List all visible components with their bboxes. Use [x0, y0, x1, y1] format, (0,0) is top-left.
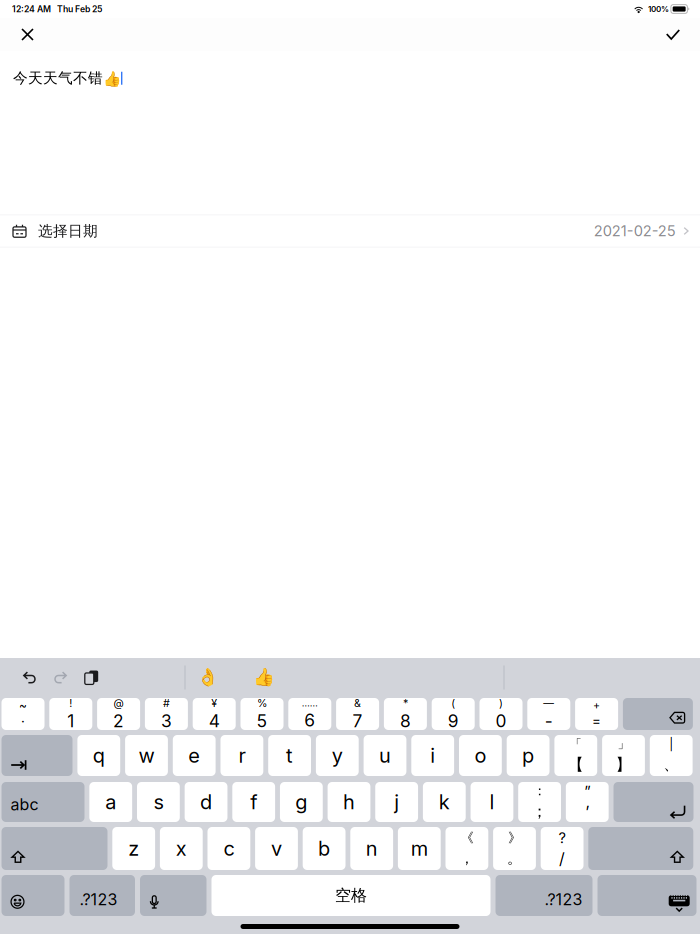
button[interactable]: Thumbs up emoji — [241, 663, 285, 691]
staticText: / — [559, 849, 565, 868]
button[interactable]: Tab — [1, 735, 72, 776]
staticText: d — [200, 790, 212, 814]
staticText: .?123 — [79, 890, 117, 909]
button[interactable]: Hide Keyboard — [597, 875, 696, 916]
button[interactable]: ? — [541, 827, 583, 870]
button[interactable]: o — [459, 735, 502, 776]
button[interactable]: Shift — [1, 827, 107, 870]
staticText: 今天天气不错👍 — [13, 69, 121, 87]
button[interactable]: ! — [49, 698, 92, 730]
button[interactable]: 」 — [602, 735, 645, 776]
staticText: 3 — [161, 710, 172, 731]
button[interactable]: ： — [518, 782, 561, 822]
button[interactable]: & — [336, 698, 379, 730]
button[interactable]: k — [423, 782, 466, 822]
button[interactable]: j — [375, 782, 418, 822]
button[interactable]: p — [507, 735, 549, 776]
button[interactable]: q — [77, 735, 120, 776]
staticText: s — [153, 790, 163, 814]
button[interactable]: 空格 — [211, 875, 490, 916]
button[interactable]: a — [89, 782, 132, 822]
staticText: — — [543, 697, 554, 709]
staticText: % — [257, 697, 267, 709]
button[interactable]: Save — [651, 18, 695, 51]
button[interactable]: ¥ — [193, 698, 236, 730]
staticText: 👍 — [252, 667, 274, 688]
button[interactable]: n — [350, 827, 393, 870]
button[interactable]: Delete — [623, 698, 693, 730]
staticText: 9 — [448, 710, 459, 731]
button[interactable]: c — [207, 827, 250, 870]
button[interactable]: i — [411, 735, 454, 776]
button[interactable]: g — [280, 782, 323, 822]
staticText: ? — [559, 829, 566, 847]
button[interactable]: z — [112, 827, 155, 870]
button[interactable]: ( — [432, 698, 475, 730]
button[interactable]: m — [398, 827, 441, 870]
button[interactable]: — — [527, 698, 570, 730]
button[interactable]: u — [364, 735, 406, 776]
staticText: ~ — [19, 698, 27, 713]
button[interactable]: 「 — [554, 735, 597, 776]
button[interactable]: t — [268, 735, 311, 776]
button[interactable]: Return — [613, 782, 693, 822]
staticText: 👌 — [196, 667, 218, 688]
button[interactable]: d — [185, 782, 227, 822]
staticText: & — [354, 697, 361, 709]
staticText: 2 — [113, 710, 124, 731]
button[interactable]: % — [240, 698, 283, 730]
button[interactable]: ~ — [1, 698, 44, 730]
button[interactable]: b — [303, 827, 345, 870]
button[interactable]: + — [575, 698, 618, 730]
button[interactable]: …… — [288, 698, 331, 730]
button[interactable]: Close — [5, 18, 49, 51]
staticText: 「 — [570, 736, 582, 751]
button[interactable]: Shift — [588, 827, 693, 870]
button[interactable]: | — [650, 735, 693, 776]
button[interactable]: 《 — [445, 827, 488, 870]
button[interactable]: abc — [1, 782, 84, 822]
staticText: 》 — [508, 829, 521, 846]
button[interactable]: h — [328, 782, 370, 822]
button[interactable]: @ — [97, 698, 140, 730]
staticText: | — [669, 737, 673, 751]
staticText: 、 — [663, 754, 679, 774]
button[interactable]: # — [145, 698, 188, 730]
button[interactable]: f — [232, 782, 275, 822]
button[interactable]: e — [173, 735, 216, 776]
button[interactable]: * — [384, 698, 427, 730]
button[interactable]: 》 — [493, 827, 536, 870]
button[interactable]: Dictation — [140, 875, 206, 916]
button[interactable]: Undo — [14, 663, 44, 691]
staticText: ” — [584, 782, 590, 800]
staticText: m — [411, 836, 428, 861]
staticText: u — [379, 743, 391, 768]
staticText: 1 — [67, 710, 74, 731]
staticText: h — [343, 790, 355, 814]
button[interactable]: ) — [479, 698, 522, 730]
staticText: t — [286, 743, 293, 768]
button[interactable]: r — [220, 735, 263, 776]
button[interactable]: s — [137, 782, 180, 822]
staticText: ： — [533, 782, 546, 799]
button[interactable]: y — [316, 735, 359, 776]
staticText: 2021-02-25 — [594, 222, 676, 240]
button[interactable]: w — [125, 735, 168, 776]
button[interactable]: ” — [566, 782, 609, 822]
button[interactable]: OK hand emoji — [185, 663, 229, 691]
button[interactable]: Redo — [45, 663, 75, 691]
button[interactable]: x — [160, 827, 203, 870]
button[interactable]: l — [470, 782, 513, 822]
staticText: f — [250, 790, 257, 814]
button[interactable]: v — [255, 827, 298, 870]
staticText: ! — [69, 697, 72, 709]
button[interactable]: 选择日期 — [0, 214, 700, 247]
staticText: = — [592, 713, 601, 729]
staticText: a — [105, 790, 116, 814]
button[interactable]: Paste — [76, 663, 106, 691]
staticText: k — [439, 790, 450, 814]
button[interactable]: Emoji — [1, 875, 64, 916]
button[interactable]: .?123 — [69, 875, 135, 916]
button[interactable]: .?123 — [495, 875, 592, 916]
staticText: b — [318, 836, 330, 861]
